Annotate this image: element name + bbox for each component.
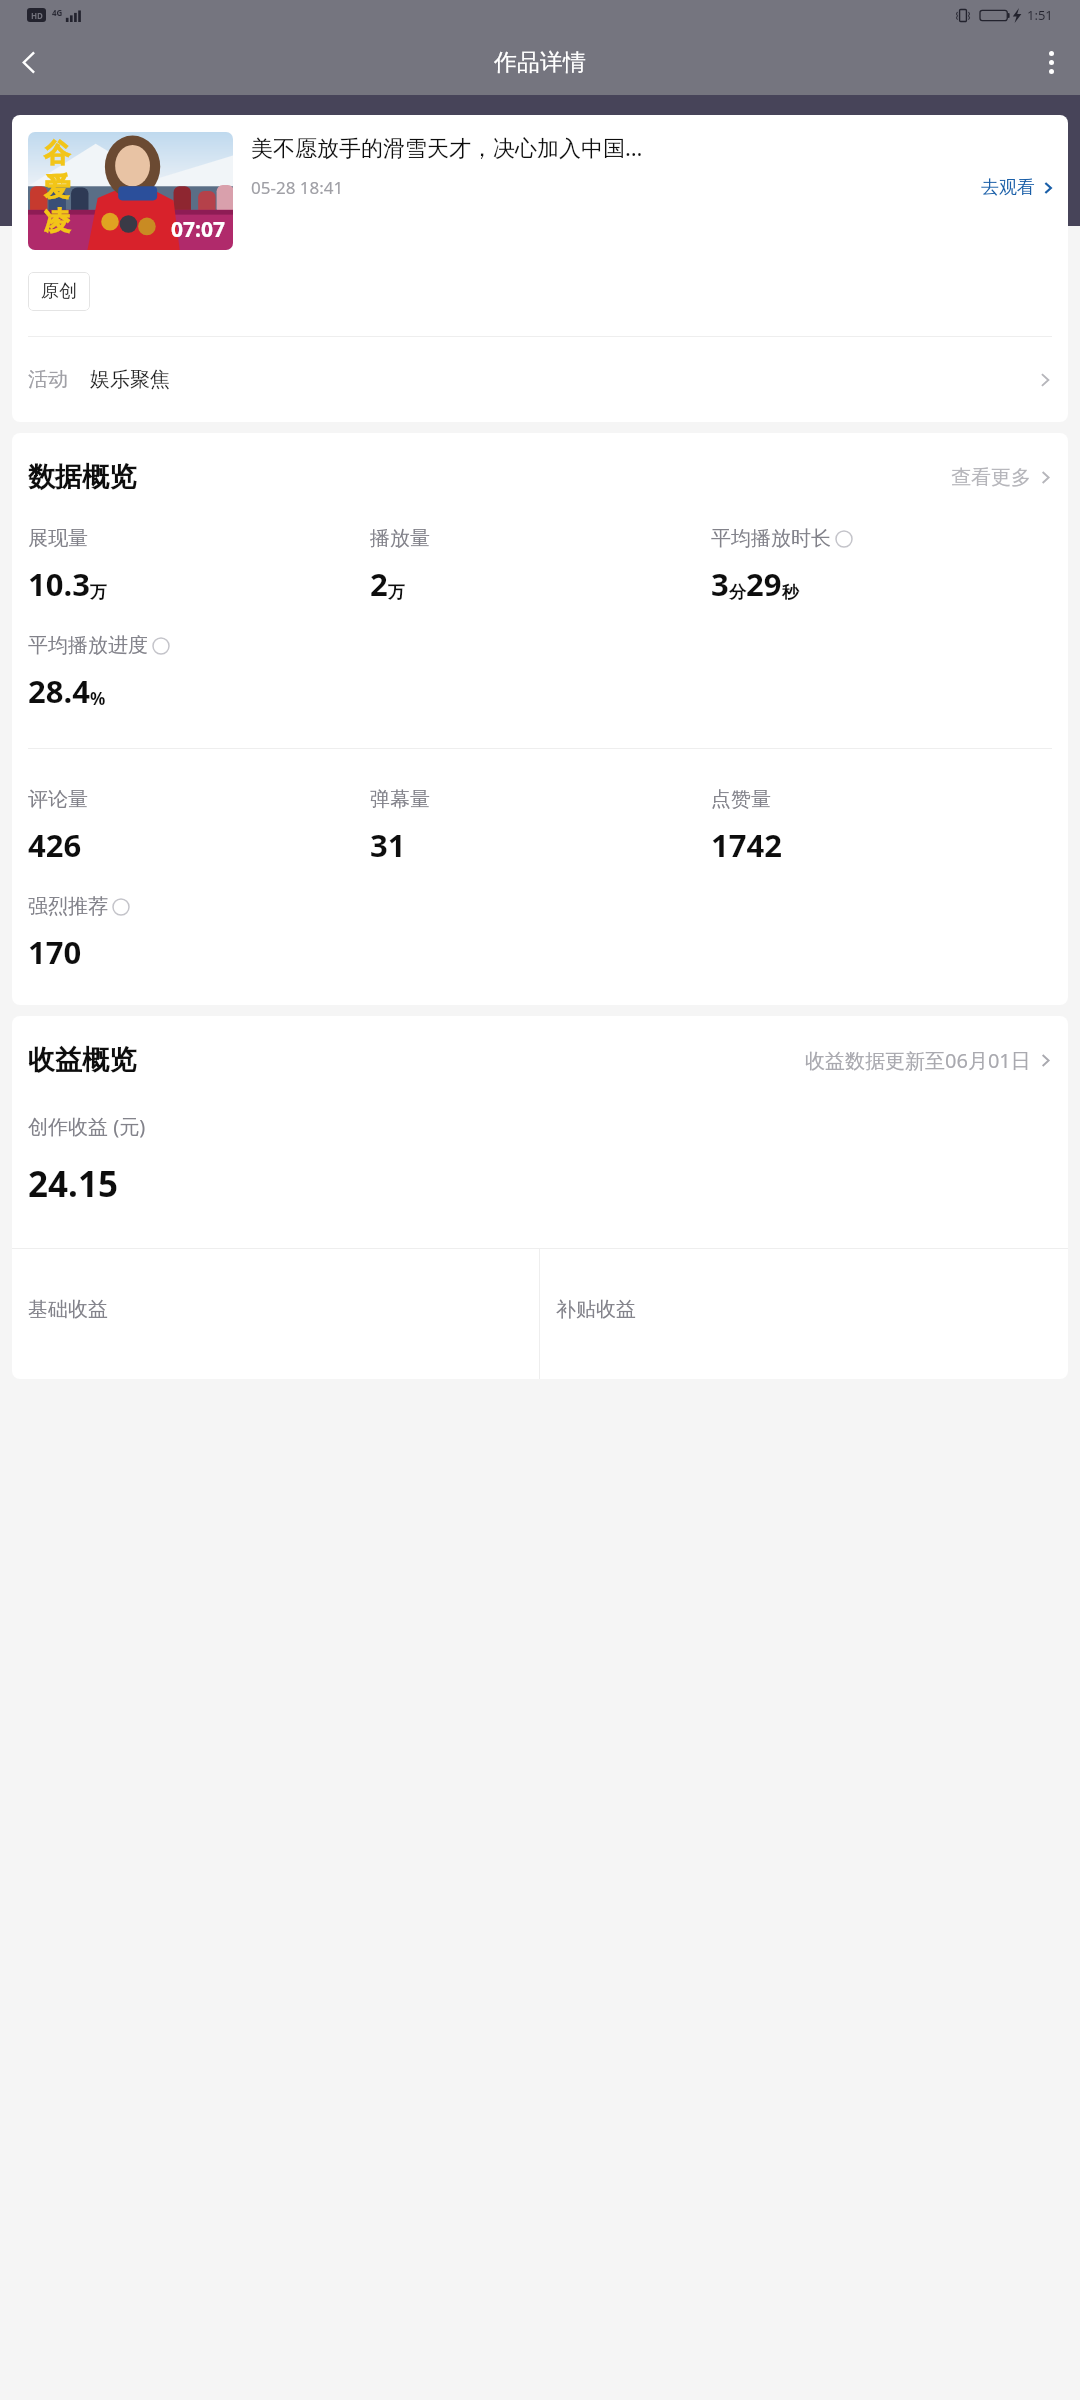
staticText: 查看更多 (951, 465, 1031, 490)
staticText: 万 (388, 582, 405, 603)
staticText: 10.3 (28, 563, 90, 605)
staticText: 426 (28, 824, 82, 866)
button[interactable]: 谷 (28, 132, 1054, 250)
staticText: 创作收益 (元) (28, 1113, 146, 1140)
staticText: 1742 (711, 824, 782, 866)
staticText: 凌 (44, 205, 70, 238)
button[interactable]: 收益数据更新至06月01日 (805, 1047, 1052, 1074)
button[interactable]: 活动 (12, 337, 1068, 422)
button[interactable]: 基础收益 (12, 1249, 539, 1379)
staticText: 05-28 18:41 (251, 176, 344, 199)
button[interactable]: More options (1022, 33, 1080, 91)
staticText: 展现量 (28, 526, 88, 551)
staticText: 原创 (41, 280, 77, 303)
staticText: HD (31, 10, 43, 21)
staticText: 平均播放时长 (711, 526, 831, 551)
button[interactable]: 原创 (28, 272, 90, 311)
staticText: 谷 (44, 137, 70, 170)
button[interactable]: 补贴收益 (540, 1249, 1068, 1379)
staticText: 数据概览 (28, 460, 136, 494)
staticText: 补贴收益 (556, 1297, 636, 1322)
staticText: 31 (370, 824, 406, 866)
staticText: 1:51 (1027, 6, 1053, 24)
staticText: 07:07 (171, 215, 225, 244)
staticText: 28.4 (28, 670, 90, 712)
button[interactable]: Back (0, 33, 58, 91)
staticText: 24.15 (28, 1160, 118, 1208)
staticText: 爱 (44, 171, 70, 204)
staticText: 秒 (782, 582, 799, 603)
staticText: % (90, 687, 106, 710)
staticText: 29 (746, 563, 782, 605)
staticText: 去观看 (981, 176, 1035, 199)
button[interactable]: 去观看 (981, 176, 1054, 199)
staticText: 3 (711, 563, 729, 605)
staticText: 万 (90, 582, 107, 603)
staticText: 收益数据更新至06月01日 (805, 1047, 1031, 1074)
staticText: 基础收益 (28, 1297, 108, 1322)
staticText: 分 (729, 582, 746, 603)
button[interactable]: 查看更多 (951, 465, 1052, 490)
staticText: 收益概览 (28, 1043, 136, 1077)
staticText: 美不愿放手的滑雪天才，决心加入中国… (251, 132, 643, 162)
staticText: 强烈推荐 (28, 894, 108, 919)
staticText: 娱乐聚焦 (90, 367, 170, 392)
staticText: 点赞量 (711, 787, 771, 812)
staticText: 播放量 (370, 526, 430, 551)
staticText: 2 (370, 563, 388, 605)
staticText: 评论量 (28, 787, 88, 812)
staticText: 170 (28, 931, 82, 973)
staticText: 平均播放进度 (28, 633, 148, 658)
staticText: 活动 (28, 367, 68, 392)
staticText: 4G (52, 7, 63, 18)
staticText: 弹幕量 (370, 787, 430, 812)
staticText: 作品详情 (494, 48, 586, 77)
